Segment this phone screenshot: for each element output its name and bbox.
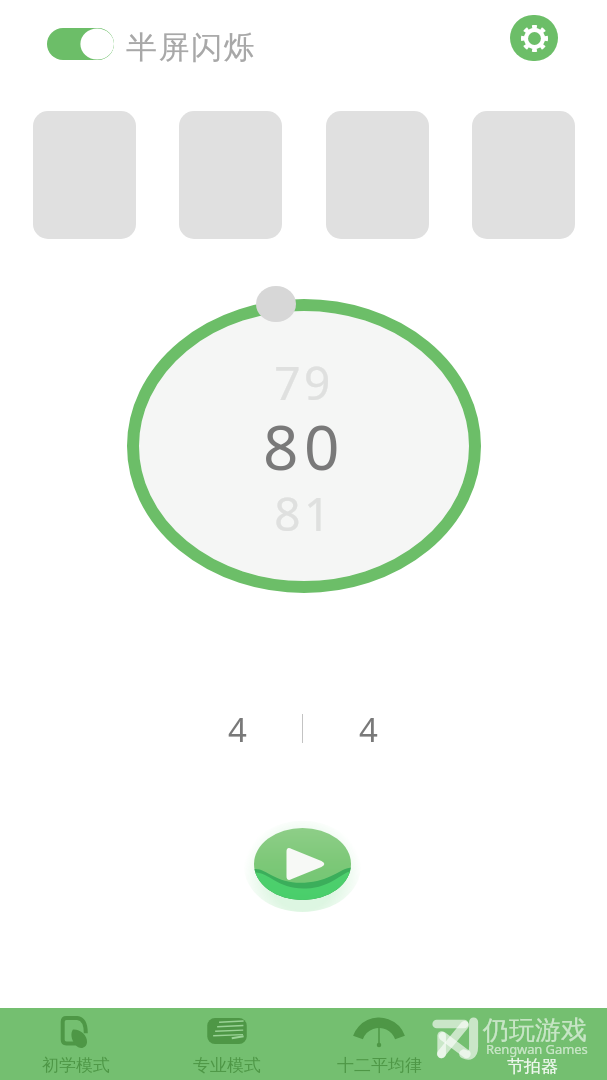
staticText: 半屏闪烁 (126, 28, 257, 67)
button[interactable]: 初学模式 (16, 1008, 136, 1080)
staticText: 4 (359, 707, 378, 752)
staticText: 专业模式 (193, 1055, 261, 1076)
button[interactable]: Half screen flash toggle (47, 28, 114, 60)
button[interactable]: Tempo dial (112, 281, 496, 611)
button[interactable]: 4 (197, 700, 277, 758)
staticText: 4 (228, 707, 247, 752)
button[interactable] (179, 111, 282, 239)
staticText: 仍玩游戏 (483, 1014, 587, 1047)
button[interactable]: 4 (328, 700, 408, 758)
button[interactable]: Settings (510, 15, 558, 61)
button[interactable]: 专业模式 (167, 1008, 287, 1080)
button[interactable]: Play (244, 816, 361, 912)
staticText: 初学模式 (42, 1055, 110, 1076)
staticText: 81 (274, 482, 334, 545)
button[interactable] (472, 111, 575, 239)
staticText: Rengwan Games (486, 1040, 588, 1058)
staticText: 十二平均律 (337, 1055, 422, 1076)
staticText: 80 (263, 404, 345, 488)
button[interactable] (326, 111, 429, 239)
staticText: 79 (274, 351, 334, 414)
button[interactable] (33, 111, 136, 239)
button[interactable]: 十二平均律 (319, 1008, 439, 1080)
staticText: 节拍器 (507, 1056, 558, 1077)
